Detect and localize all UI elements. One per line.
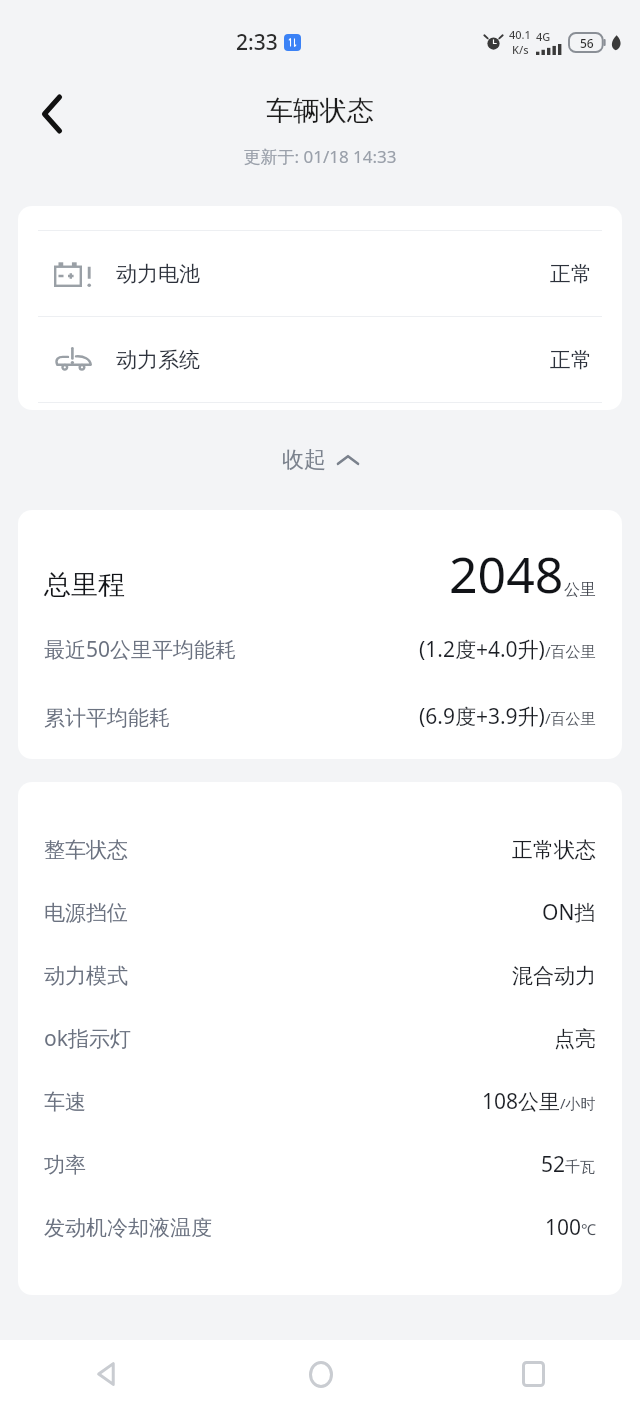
button[interactable]: Home [214,1340,427,1408]
staticText: (6.9度+3.9升)/百公里 [419,702,596,731]
button[interactable]: 总里程 [44,540,596,608]
staticText: 整车状态 [44,837,128,863]
button[interactable]: 累计平均能耗 [44,702,596,731]
staticText: 更新于: 01/18 14:33 [243,145,397,168]
staticText: 正常 [550,347,592,373]
button[interactable]: 功率 [18,1133,622,1196]
staticText: (1.2度+4.0升)/百公里 [419,635,596,664]
button[interactable]: 收起 [264,436,376,484]
button[interactable]: 电源挡位 [18,881,622,944]
staticText: 100℃ [545,1213,596,1242]
staticText: ON挡 [542,898,596,927]
button[interactable]: 最近50公里平均能耗 [44,635,596,664]
staticText: 动力模式 [44,963,128,989]
staticText: 车辆状态 [266,94,374,128]
staticText: 电源挡位 [44,900,128,926]
staticText: 40.1 [509,27,531,42]
staticText: 混合动力 [512,963,596,989]
staticText: 2:33 [236,28,278,57]
staticText: K/s [512,42,529,57]
staticText: 动力电池 [116,261,200,287]
staticText: 56 [580,35,594,51]
staticText: 公里 [564,580,596,600]
staticText: ok指示灯 [44,1024,131,1053]
staticText: 功率 [44,1152,86,1178]
button[interactable]: Recent apps [427,1340,640,1408]
button[interactable]: Back [0,1340,214,1408]
button[interactable]: 整车状态 [18,818,622,881]
staticText: 52千瓦 [541,1150,596,1179]
button[interactable]: ok指示灯 [18,1007,622,1070]
button[interactable]: 动力系统 [18,317,622,402]
staticText: 最近50公里平均能耗 [44,635,237,664]
staticText: 2048 [449,540,564,608]
staticText: 正常状态 [512,837,596,863]
button[interactable]: 车速 [18,1070,622,1133]
button[interactable]: 动力电池 [18,231,622,316]
staticText: 总里程 [44,568,125,602]
staticText: 正常 [550,261,592,287]
button[interactable]: 发动机冷却液温度 [18,1196,622,1259]
staticText: 108公里/小时 [482,1087,596,1116]
staticText: 点亮 [554,1026,596,1052]
staticText: 车速 [44,1089,86,1115]
staticText: 4G [536,29,551,44]
staticText: 动力系统 [116,347,200,373]
button[interactable]: Back [24,86,80,142]
staticText: 累计平均能耗 [44,705,170,731]
staticText: 发动机冷却液温度 [44,1215,212,1241]
staticText: 收起 [282,446,326,474]
button[interactable]: 动力模式 [18,944,622,1007]
